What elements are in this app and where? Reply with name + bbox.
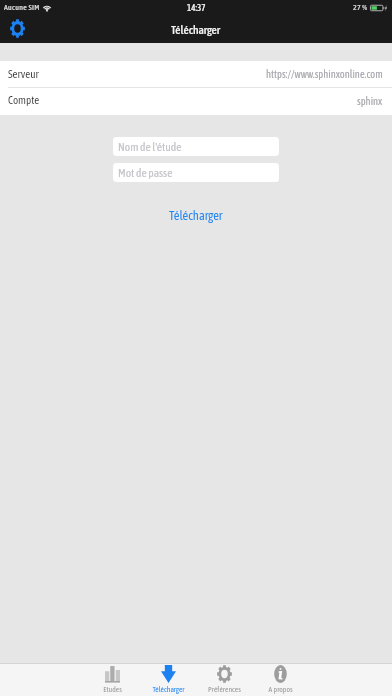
button[interactable]: Serveur [0,61,392,87]
staticText: A propos [268,685,293,694]
button[interactable]: Nom de l'étude [113,137,279,156]
staticText: https://www.sphinxonline.com [266,68,383,80]
staticText: 27 % [353,3,368,12]
staticText: Préférences [208,685,241,694]
button[interactable]: Mot de passe [113,163,279,182]
button[interactable]: Réglages [3,15,31,43]
button[interactable]: Télécharger [140,664,196,696]
staticText: Nom de l'étude [118,140,182,153]
staticText: Compte [8,94,40,107]
staticText: Aucune SIM [4,3,40,12]
button[interactable]: A propos [252,664,308,696]
button[interactable]: Etudes [84,664,140,696]
staticText: Etudes [103,685,122,694]
staticText: Télécharger [169,208,223,222]
staticText: Télécharger [171,23,221,36]
staticText: sphinx [357,95,383,107]
staticText: Mot de passe [118,166,173,179]
staticText: Serveur [8,68,39,81]
staticText: Télécharger [152,685,185,694]
staticText: 14:37 [187,3,206,13]
button[interactable]: Préférences [196,664,252,696]
button[interactable]: Compte [0,88,392,115]
button[interactable]: Télécharger [161,206,231,224]
